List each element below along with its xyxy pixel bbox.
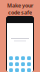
staticText: code safe bbox=[8, 9, 32, 16]
button[interactable]: Key bbox=[27, 68, 31, 72]
button[interactable]: Key bbox=[9, 68, 13, 72]
button[interactable]: Key bbox=[15, 68, 19, 72]
staticText: Make your bbox=[7, 2, 33, 9]
button[interactable]: Key bbox=[27, 62, 31, 66]
button[interactable]: Key bbox=[15, 62, 19, 66]
button[interactable]: Key bbox=[15, 56, 19, 60]
button[interactable]: Key bbox=[9, 56, 13, 60]
button[interactable]: Key bbox=[21, 56, 25, 60]
button[interactable]: Key bbox=[21, 68, 25, 72]
button[interactable]: Key bbox=[27, 56, 31, 60]
button[interactable]: Key bbox=[9, 62, 13, 66]
button[interactable]: Key bbox=[21, 62, 25, 66]
